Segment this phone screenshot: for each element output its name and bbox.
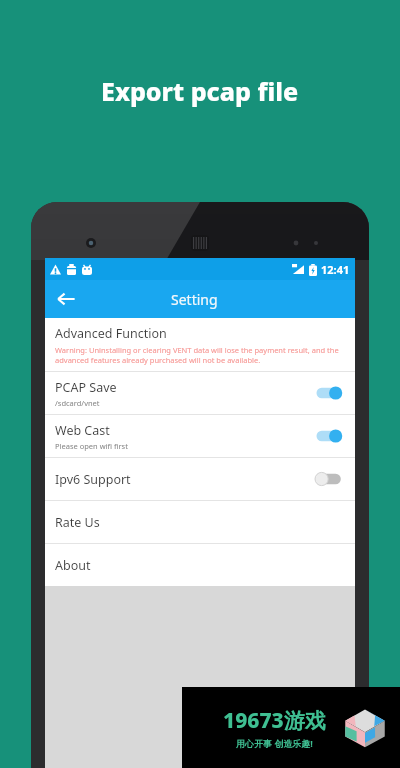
staticText: Export pcap file [101, 74, 299, 108]
button[interactable]: Switch off [315, 469, 345, 489]
button[interactable]: Rate Us [45, 501, 355, 543]
button[interactable]: Advanced Function [45, 318, 355, 371]
button[interactable]: Ipv6 Support [45, 458, 355, 500]
staticText: Warning: Uninstalling or clearing VENT d… [55, 345, 345, 365]
button[interactable]: PCAP Save [45, 372, 355, 414]
staticText: PCAP Save [55, 379, 117, 396]
staticText: Web Cast [55, 422, 110, 439]
button[interactable]: Back [49, 282, 83, 316]
staticText: Please open wifi first [55, 441, 128, 451]
staticText: /sdcard/vnet [55, 398, 100, 408]
staticText: 19673游戏 [223, 706, 326, 735]
staticText: 12:41 [321, 262, 350, 277]
button[interactable]: Web Cast [45, 415, 355, 457]
staticText: Ipv6 Support [55, 471, 131, 488]
staticText: 用心开事 创造乐趣! [236, 737, 313, 749]
button[interactable]: About [45, 544, 355, 586]
staticText: Advanced Function [55, 325, 167, 342]
staticText: Setting [171, 290, 218, 309]
button[interactable]: Switch on [315, 383, 345, 403]
staticText: About [55, 557, 91, 574]
button[interactable]: Switch on [315, 426, 345, 446]
staticText: Rate Us [55, 514, 100, 531]
